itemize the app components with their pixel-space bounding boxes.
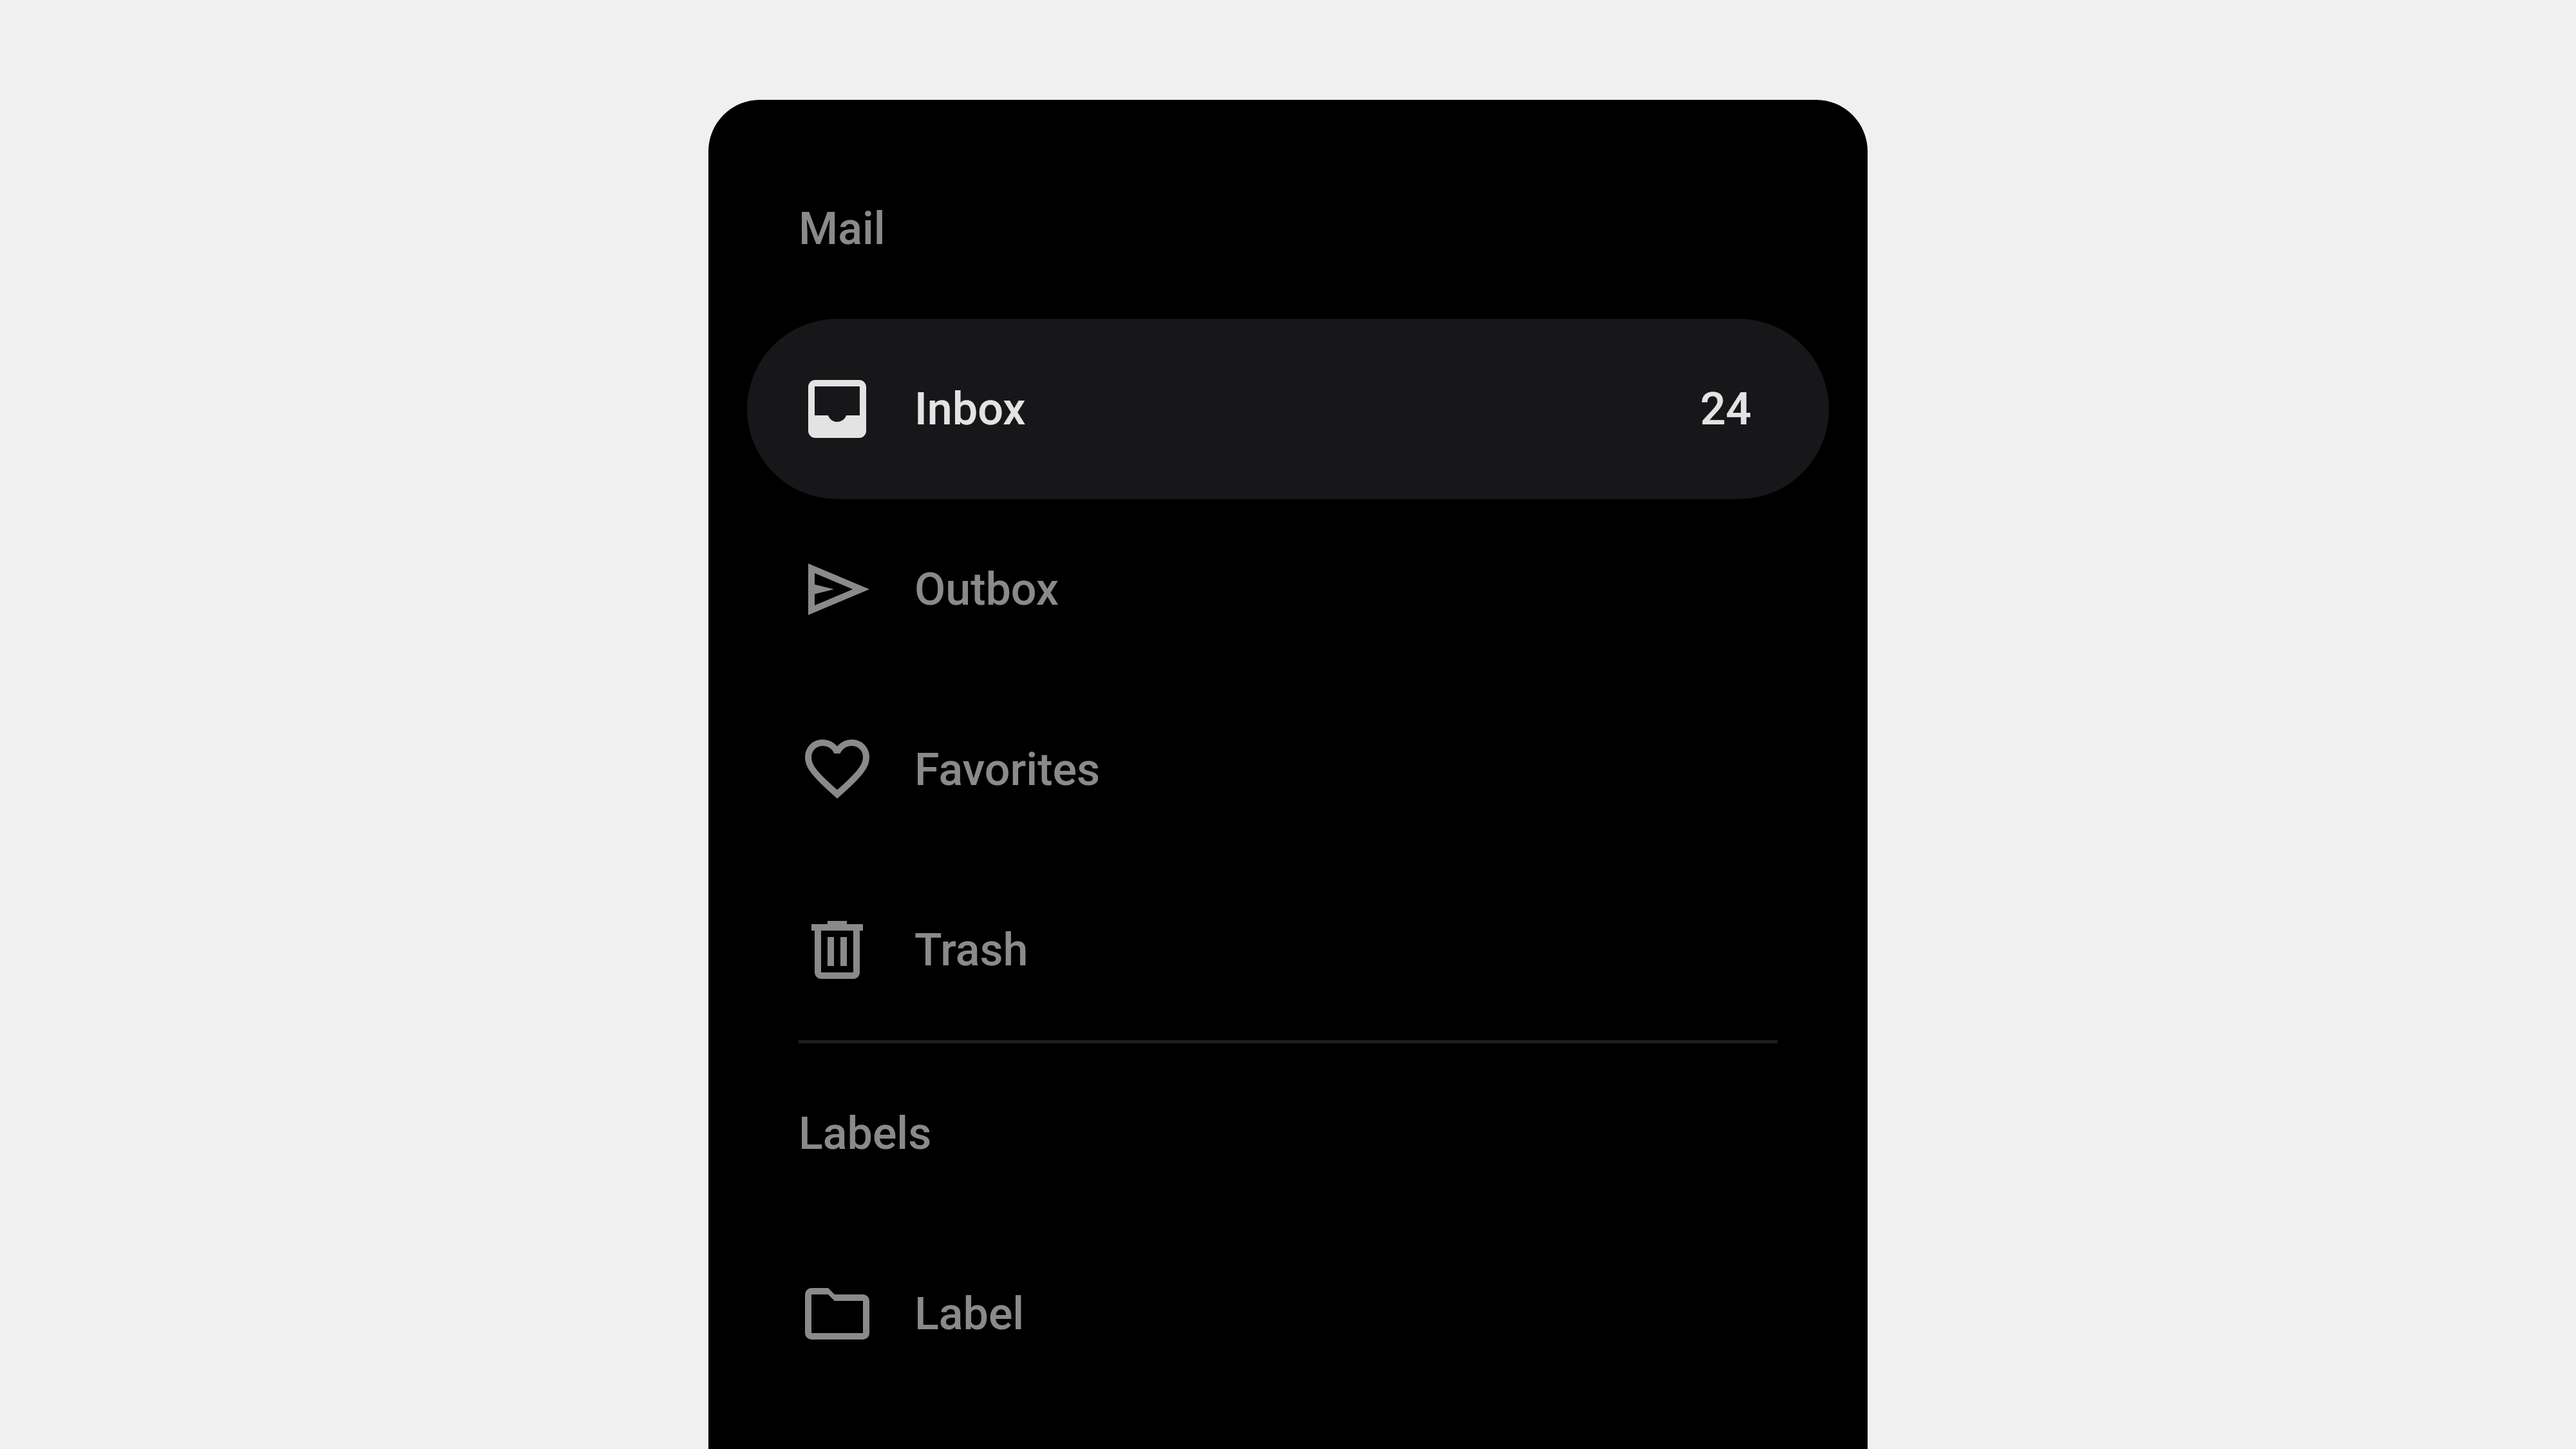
staticText: Outbox [914,563,1059,616]
other: Folder [799,1275,876,1352]
button[interactable]: Outbox [747,499,1829,679]
staticText: Inbox [914,383,1026,435]
button[interactable]: Label [747,1224,1829,1404]
button[interactable]: Trash [747,860,1829,1040]
staticText: Label [914,1287,1025,1340]
staticText: Trash [914,923,1028,976]
other: Send [799,551,876,628]
staticText: 24 [1700,383,1752,435]
other: Delete [799,911,876,989]
staticText: Labels [799,1107,932,1160]
staticText: Mail [799,202,885,255]
other: Favorite [799,731,876,808]
button[interactable]: Inbox [747,319,1829,499]
other: Inbox [799,370,876,448]
button[interactable]: Favorites [747,679,1829,860]
staticText: Favorites [914,743,1100,796]
